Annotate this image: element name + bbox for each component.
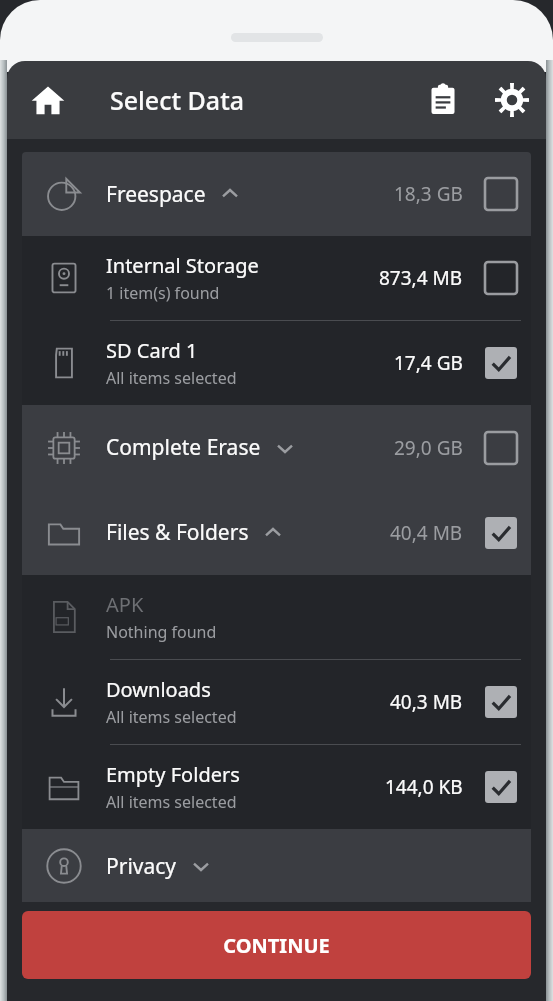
staticText: Freespace: [106, 180, 206, 209]
button[interactable]: Downloads: [22, 660, 531, 744]
staticText: 1 item(s) found: [106, 282, 220, 304]
staticText: Privacy: [106, 852, 177, 881]
staticText: Nothing found: [106, 621, 217, 643]
button[interactable]: APK: [22, 575, 531, 659]
staticText: SD Card 1: [106, 337, 198, 364]
staticText: All items selected: [106, 791, 237, 813]
staticText: 29,0 GB: [394, 435, 463, 461]
staticText: All items selected: [106, 706, 237, 728]
staticText: APK: [106, 591, 144, 618]
staticText: Select Data: [110, 83, 245, 117]
staticText: Internal Storage: [106, 252, 259, 279]
staticText: 17,4 GB: [394, 350, 463, 376]
button[interactable]: Empty Folders: [22, 745, 531, 829]
staticText: 873,4 MB: [379, 265, 463, 291]
button[interactable]: Files & Folders: [22, 490, 531, 575]
staticText: 40,3 MB: [390, 689, 463, 715]
button[interactable]: Privacy: [22, 829, 531, 902]
button[interactable]: Clipboard: [418, 75, 468, 125]
staticText: Empty Folders: [106, 761, 240, 788]
button[interactable]: Complete Erase: [22, 405, 531, 490]
button[interactable]: Home: [21, 73, 75, 127]
button[interactable]: SD Card 1: [22, 321, 531, 405]
staticText: CONTINUE: [223, 932, 330, 959]
staticText: 18,3 GB: [394, 181, 463, 207]
staticText: Files & Folders: [106, 518, 249, 547]
staticText: Downloads: [106, 676, 211, 703]
button[interactable]: Freespace: [22, 152, 531, 236]
staticText: All items selected: [106, 367, 237, 389]
button[interactable]: Settings: [486, 74, 538, 126]
staticText: Complete Erase: [106, 433, 261, 462]
button[interactable]: Internal Storage: [22, 236, 531, 320]
staticText: 40,4 MB: [390, 520, 463, 546]
button[interactable]: CONTINUE: [22, 911, 531, 979]
staticText: 144,0 KB: [385, 774, 463, 800]
